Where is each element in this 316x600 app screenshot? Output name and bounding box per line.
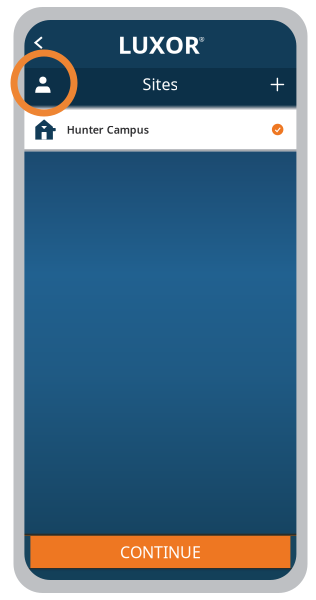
button[interactable]: Add site: [258, 68, 296, 105]
button[interactable]: Hunter Campus: [24, 110, 296, 149]
staticText: LUXOR: [118, 29, 200, 60]
button[interactable]: Account: [24, 68, 62, 105]
staticText: CONTINUE: [120, 541, 201, 563]
button[interactable]: Back: [27, 24, 55, 64]
staticText: Sites: [142, 73, 178, 95]
staticText: Hunter Campus: [67, 122, 149, 137]
button[interactable]: CONTINUE: [30, 536, 290, 568]
staticText: ®: [199, 35, 205, 44]
